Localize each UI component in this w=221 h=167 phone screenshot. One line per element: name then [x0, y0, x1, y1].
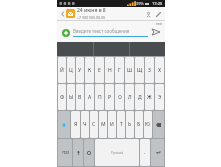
staticText: К	[88, 67, 92, 74]
staticText: Ф	[60, 94, 65, 101]
staticText: Ш	[127, 67, 133, 74]
staticText: С	[92, 121, 96, 128]
staticText: 39%	[136, 1, 144, 6]
button[interactable]: О	[115, 84, 124, 110]
button[interactable]: А	[85, 84, 94, 110]
staticText: 17:25	[152, 1, 163, 6]
staticText: Ю	[145, 121, 151, 128]
staticText: Д	[138, 94, 142, 101]
staticText: Р	[108, 94, 112, 101]
button[interactable]: Back	[59, 10, 66, 17]
button[interactable]: Ж	[145, 84, 154, 110]
staticText: Русский	[111, 151, 124, 155]
staticText: Ы	[69, 94, 74, 101]
staticText: Ч	[83, 121, 87, 128]
button[interactable]: Ы	[67, 84, 75, 110]
staticText: ?123	[62, 151, 69, 155]
button[interactable]: Shift	[58, 111, 70, 138]
staticText: .	[144, 149, 146, 156]
staticText: В	[78, 94, 82, 101]
staticText: +7 900 000-00-00	[77, 15, 106, 20]
button[interactable]: Э	[155, 84, 164, 110]
button[interactable]: Send	[150, 26, 162, 38]
button[interactable]: Я	[71, 111, 80, 138]
button[interactable]: Input method	[84, 139, 94, 166]
button[interactable]: 24 июня в 8	[77, 7, 143, 20]
button[interactable]: И	[108, 111, 116, 138]
button[interactable]: Ф	[58, 84, 66, 110]
button[interactable]: .	[140, 139, 150, 166]
staticText: У	[78, 67, 82, 74]
staticText: Л	[128, 94, 132, 101]
button[interactable]: Л	[125, 84, 134, 110]
staticText: О	[118, 94, 122, 101]
staticText: Н	[108, 67, 112, 74]
staticText: Я	[74, 121, 78, 128]
staticText: Введите текст сообщения	[73, 28, 130, 34]
staticText: Х	[158, 67, 162, 74]
button[interactable]: Add attachment	[60, 27, 71, 38]
button[interactable]: Г	[115, 57, 124, 83]
button[interactable]: Т	[117, 111, 125, 138]
button[interactable]: П	[95, 84, 104, 110]
button[interactable]: Введите текст сообщения	[73, 28, 148, 37]
staticText: Е	[98, 67, 101, 74]
button[interactable]: К	[85, 57, 94, 83]
button[interactable]: Н	[105, 57, 114, 83]
button[interactable]: Б	[135, 111, 143, 138]
staticText: Т	[120, 121, 123, 128]
staticText: Ь	[128, 121, 132, 128]
button[interactable]: Backspace	[153, 111, 164, 138]
button[interactable]: В	[76, 84, 84, 110]
button[interactable]: Русский	[95, 139, 139, 166]
staticText: М	[101, 121, 106, 128]
staticText: Э	[158, 94, 162, 101]
button[interactable]: Ь	[126, 111, 134, 138]
staticText: А	[88, 94, 92, 101]
button[interactable]: Д	[135, 84, 144, 110]
button[interactable]: З	[145, 57, 154, 83]
staticText: П	[98, 94, 102, 101]
button[interactable]: Ц	[67, 57, 75, 83]
button[interactable]: Numbers	[58, 139, 72, 166]
button[interactable]: Contact	[143, 9, 153, 19]
button[interactable]: Х	[155, 57, 164, 83]
button[interactable]: Й	[58, 57, 66, 83]
staticText: Ж	[147, 94, 152, 101]
button[interactable]: Attach	[153, 9, 163, 19]
button[interactable]: С	[90, 111, 98, 138]
staticText: Й	[60, 67, 64, 74]
staticText: Б	[137, 121, 141, 128]
button[interactable]: Р	[105, 84, 114, 110]
button[interactable]: Ю	[144, 111, 152, 138]
staticText: И	[110, 121, 114, 128]
staticText: Щ	[137, 67, 143, 74]
button[interactable]: Voice input	[73, 139, 83, 166]
staticText: Ц	[69, 67, 73, 74]
staticText: Г	[118, 67, 121, 74]
button[interactable]: Enter	[151, 139, 164, 166]
staticText: 24 июня в 8	[77, 7, 106, 14]
staticText: З	[148, 67, 151, 74]
button[interactable]: Е	[95, 57, 104, 83]
button[interactable]: У	[76, 57, 84, 83]
button[interactable]: Щ	[135, 57, 144, 83]
button[interactable]: Ш	[125, 57, 134, 83]
button[interactable]: М	[99, 111, 107, 138]
button[interactable]: Ч	[81, 111, 89, 138]
staticText: next	[156, 22, 163, 26]
